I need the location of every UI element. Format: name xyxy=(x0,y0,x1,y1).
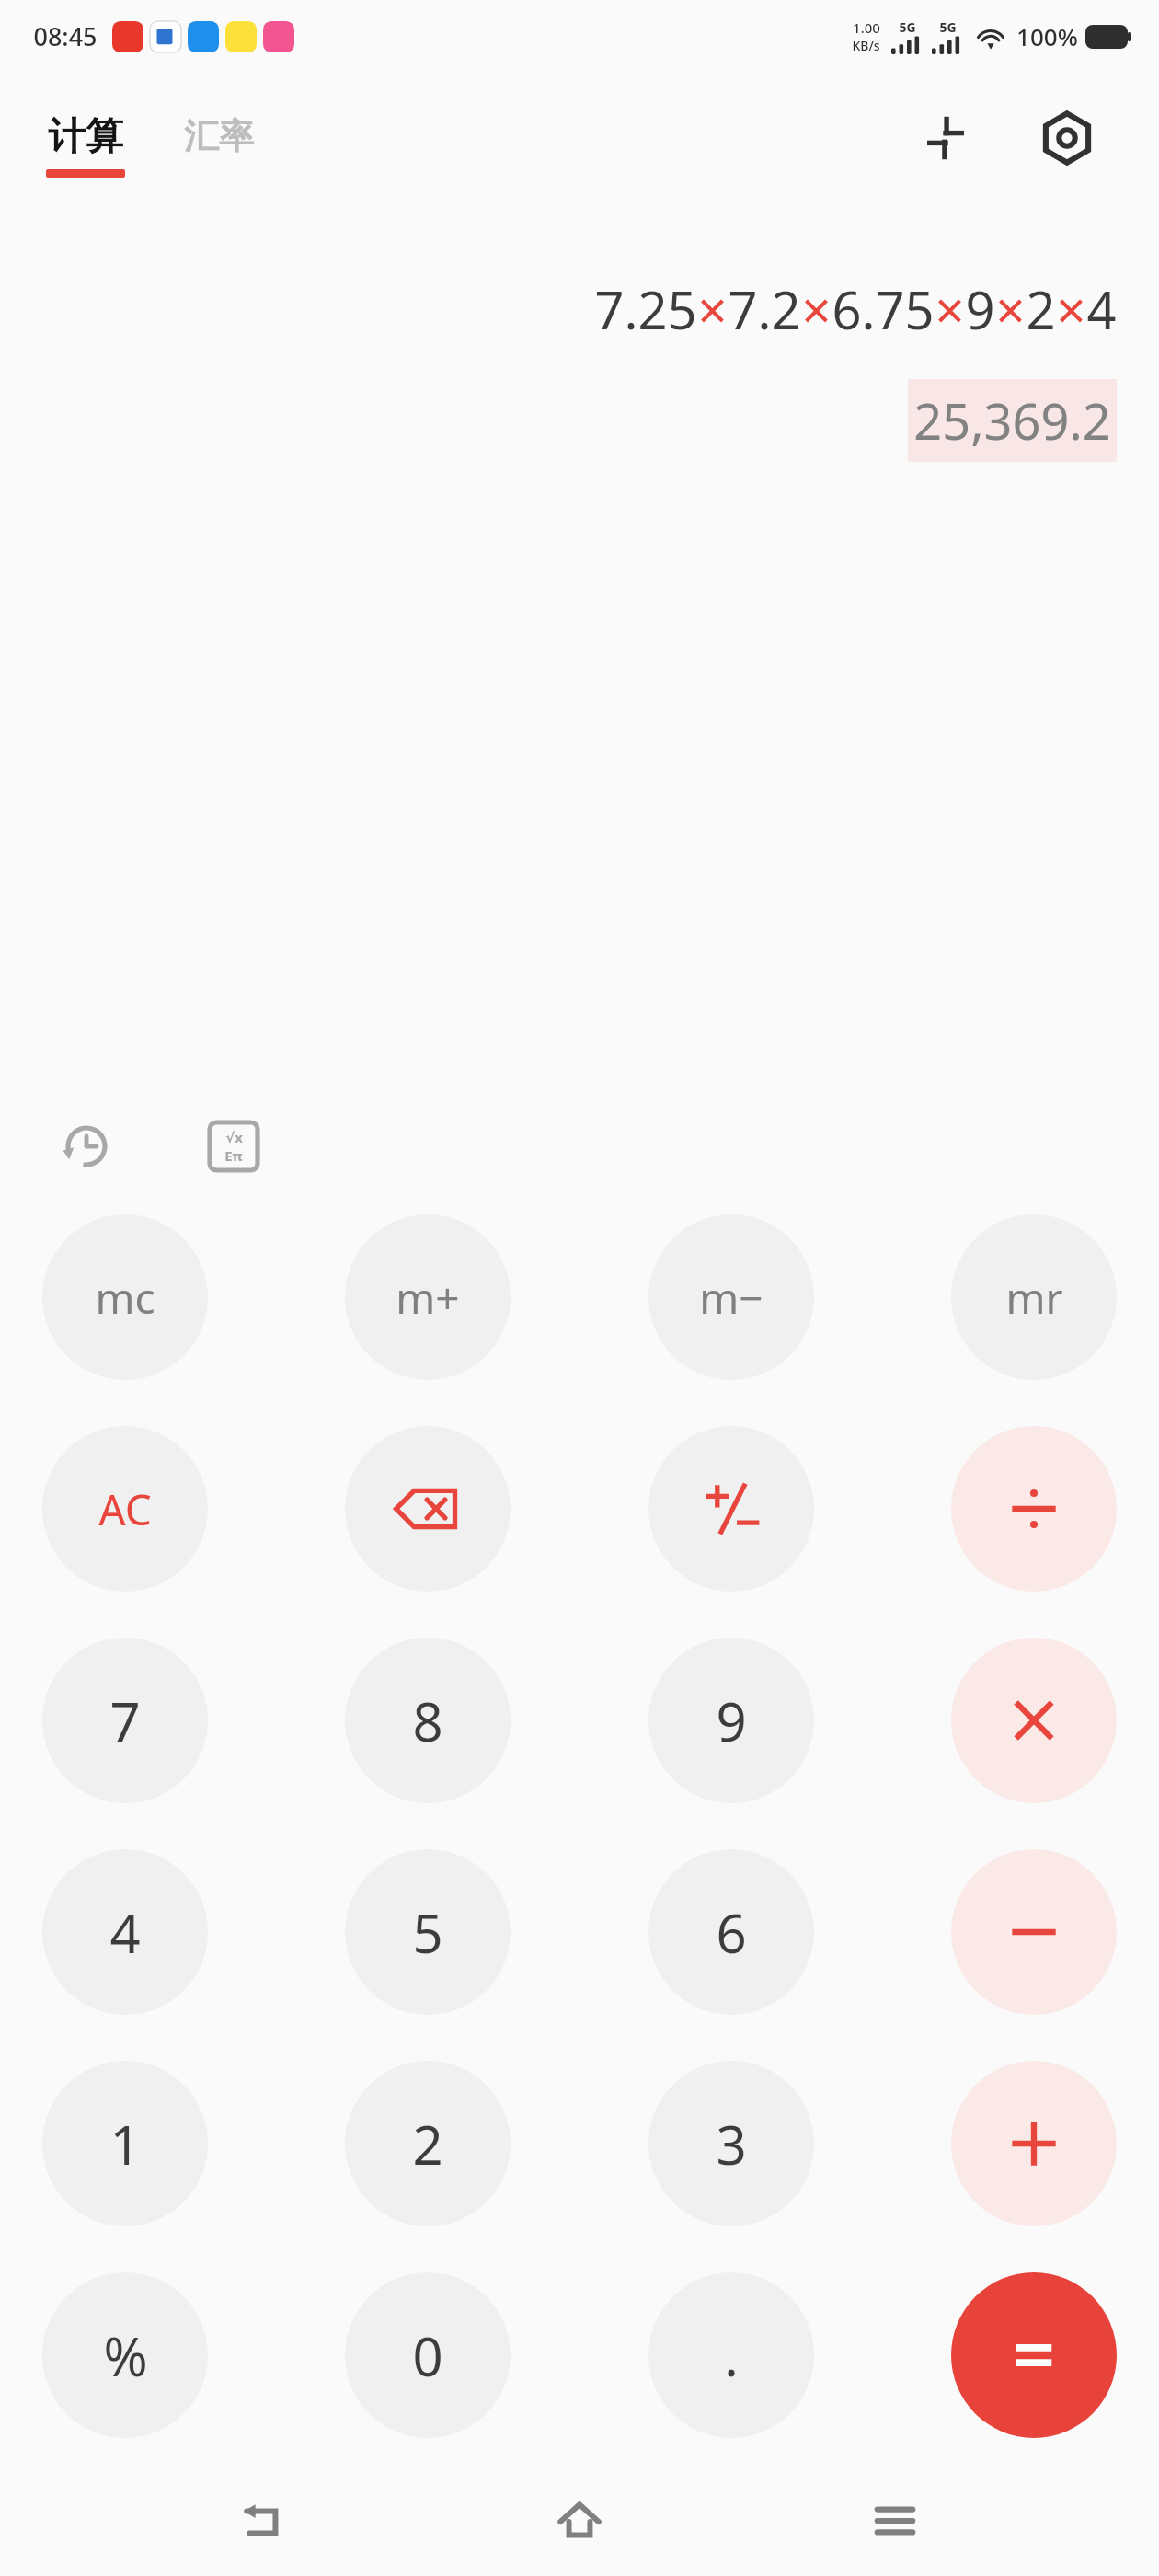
button[interactable]: History xyxy=(50,1110,123,1183)
button[interactable]: Back xyxy=(214,2470,316,2571)
staticText: 2 xyxy=(1026,274,1056,344)
button[interactable]: . xyxy=(648,2272,814,2438)
button[interactable]: 5 xyxy=(345,1849,511,2015)
staticText: m+ xyxy=(396,1269,460,1327)
staticText: 2 xyxy=(412,2108,443,2180)
button[interactable]: Settings xyxy=(1028,99,1106,177)
button[interactable]: Home xyxy=(529,2470,630,2571)
staticText: 5 xyxy=(412,1896,443,1969)
button[interactable]: m− xyxy=(648,1214,814,1380)
staticText: AC xyxy=(98,1480,152,1538)
staticText: 9 xyxy=(965,274,995,344)
button[interactable] xyxy=(951,1638,1117,1803)
button[interactable]: AC xyxy=(42,1426,208,1592)
button[interactable]: Recents xyxy=(844,2470,946,2571)
button[interactable] xyxy=(951,2272,1117,2438)
button[interactable]: Fullscreen xyxy=(907,99,984,177)
button[interactable]: 计算 xyxy=(42,113,129,178)
staticText: 100% xyxy=(1016,20,1078,52)
staticText: 4 xyxy=(109,1896,141,1969)
staticText: 5G xyxy=(899,18,916,36)
staticText: 汇率 xyxy=(184,114,254,158)
staticText: mc xyxy=(95,1269,155,1327)
staticText: × xyxy=(995,274,1026,344)
button[interactable] xyxy=(951,1849,1117,2015)
staticText: √x xyxy=(225,1128,243,1146)
button[interactable]: 6 xyxy=(648,1849,814,2015)
button[interactable]: m+ xyxy=(345,1214,511,1380)
button[interactable] xyxy=(951,2061,1117,2226)
staticText: % xyxy=(103,2319,148,2392)
staticText: KB/s xyxy=(852,37,880,54)
staticText: 25,369.2 xyxy=(913,386,1111,454)
button[interactable]: 3 xyxy=(648,2061,814,2226)
staticText: 6.75 xyxy=(832,274,935,344)
staticText: . xyxy=(724,2319,739,2392)
staticText: 0 xyxy=(412,2319,443,2392)
staticText: × xyxy=(801,274,832,344)
button[interactable] xyxy=(951,1426,1117,1592)
staticText: 7.25 xyxy=(594,274,697,344)
button[interactable]: 1 xyxy=(42,2061,208,2226)
staticText: m− xyxy=(699,1269,763,1327)
staticText: × xyxy=(1056,274,1086,344)
staticText: 7.2 xyxy=(728,274,801,344)
staticText: 6 xyxy=(716,1896,747,1969)
button[interactable]: Backspace xyxy=(345,1426,511,1592)
button[interactable]: 0 xyxy=(345,2272,511,2438)
staticText: 8 xyxy=(412,1685,443,1757)
button[interactable]: mc xyxy=(42,1214,208,1380)
staticText: 计算 xyxy=(48,113,123,161)
staticText: 3 xyxy=(716,2108,747,2180)
staticText: mr xyxy=(1005,1269,1063,1327)
staticText: 5G xyxy=(939,18,957,36)
staticText: 1 xyxy=(109,2108,141,2180)
button[interactable]: 汇率 xyxy=(180,123,258,167)
button[interactable]: mr xyxy=(951,1214,1117,1380)
button[interactable]: % xyxy=(42,2272,208,2438)
staticText: 7 xyxy=(109,1685,141,1757)
button[interactable]: 7 xyxy=(42,1638,208,1803)
staticText: × xyxy=(935,274,965,344)
staticText: 1.00 xyxy=(853,18,880,37)
button[interactable]: 4 xyxy=(42,1849,208,2015)
staticText: × xyxy=(697,274,728,344)
staticText: 08:45 xyxy=(33,19,98,53)
button[interactable]: 9 xyxy=(648,1638,814,1803)
button[interactable]: Plus minus xyxy=(648,1426,814,1592)
staticText: Eπ xyxy=(224,1146,243,1165)
staticText: 9 xyxy=(716,1685,747,1757)
button[interactable]: 2 xyxy=(345,2061,511,2226)
button[interactable]: Scientific xyxy=(197,1110,270,1183)
staticText: 4 xyxy=(1086,274,1117,344)
button[interactable]: 8 xyxy=(345,1638,511,1803)
